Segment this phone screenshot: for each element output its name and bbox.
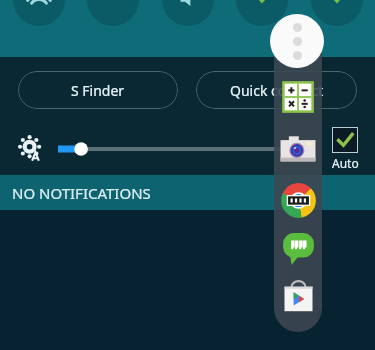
button[interactable]: Sound — [152, 0, 224, 57]
staticText: S Finder — [71, 81, 125, 100]
button[interactable] — [58, 132, 315, 166]
staticText: Toolbox — [242, 53, 283, 57]
button[interactable]: Wi-Fi — [3, 0, 75, 57]
button[interactable]: Quick connect — [196, 71, 357, 109]
button[interactable]: S Finder — [18, 71, 178, 109]
button[interactable]: More options — [270, 14, 324, 68]
button[interactable]: Auto — [323, 127, 367, 171]
button[interactable]: Play Store — [281, 279, 316, 314]
button[interactable]: Chrome Beta — [280, 182, 317, 219]
button[interactable]: Hangouts — [281, 231, 316, 266]
staticText: Download booster — [311, 53, 364, 57]
button[interactable]: Download booster — [301, 0, 373, 57]
staticText: Auto — [332, 155, 359, 171]
button[interactable]: Calculator — [280, 79, 316, 115]
button[interactable]: NFC — [77, 0, 149, 57]
staticText: Quick connect — [230, 81, 324, 100]
button[interactable]: Auto brightness — [14, 132, 48, 166]
staticText: NO NOTIFICATIONS — [12, 183, 151, 203]
button[interactable]: Camera — [279, 131, 317, 169]
button[interactable]: Toolbox — [226, 0, 298, 57]
